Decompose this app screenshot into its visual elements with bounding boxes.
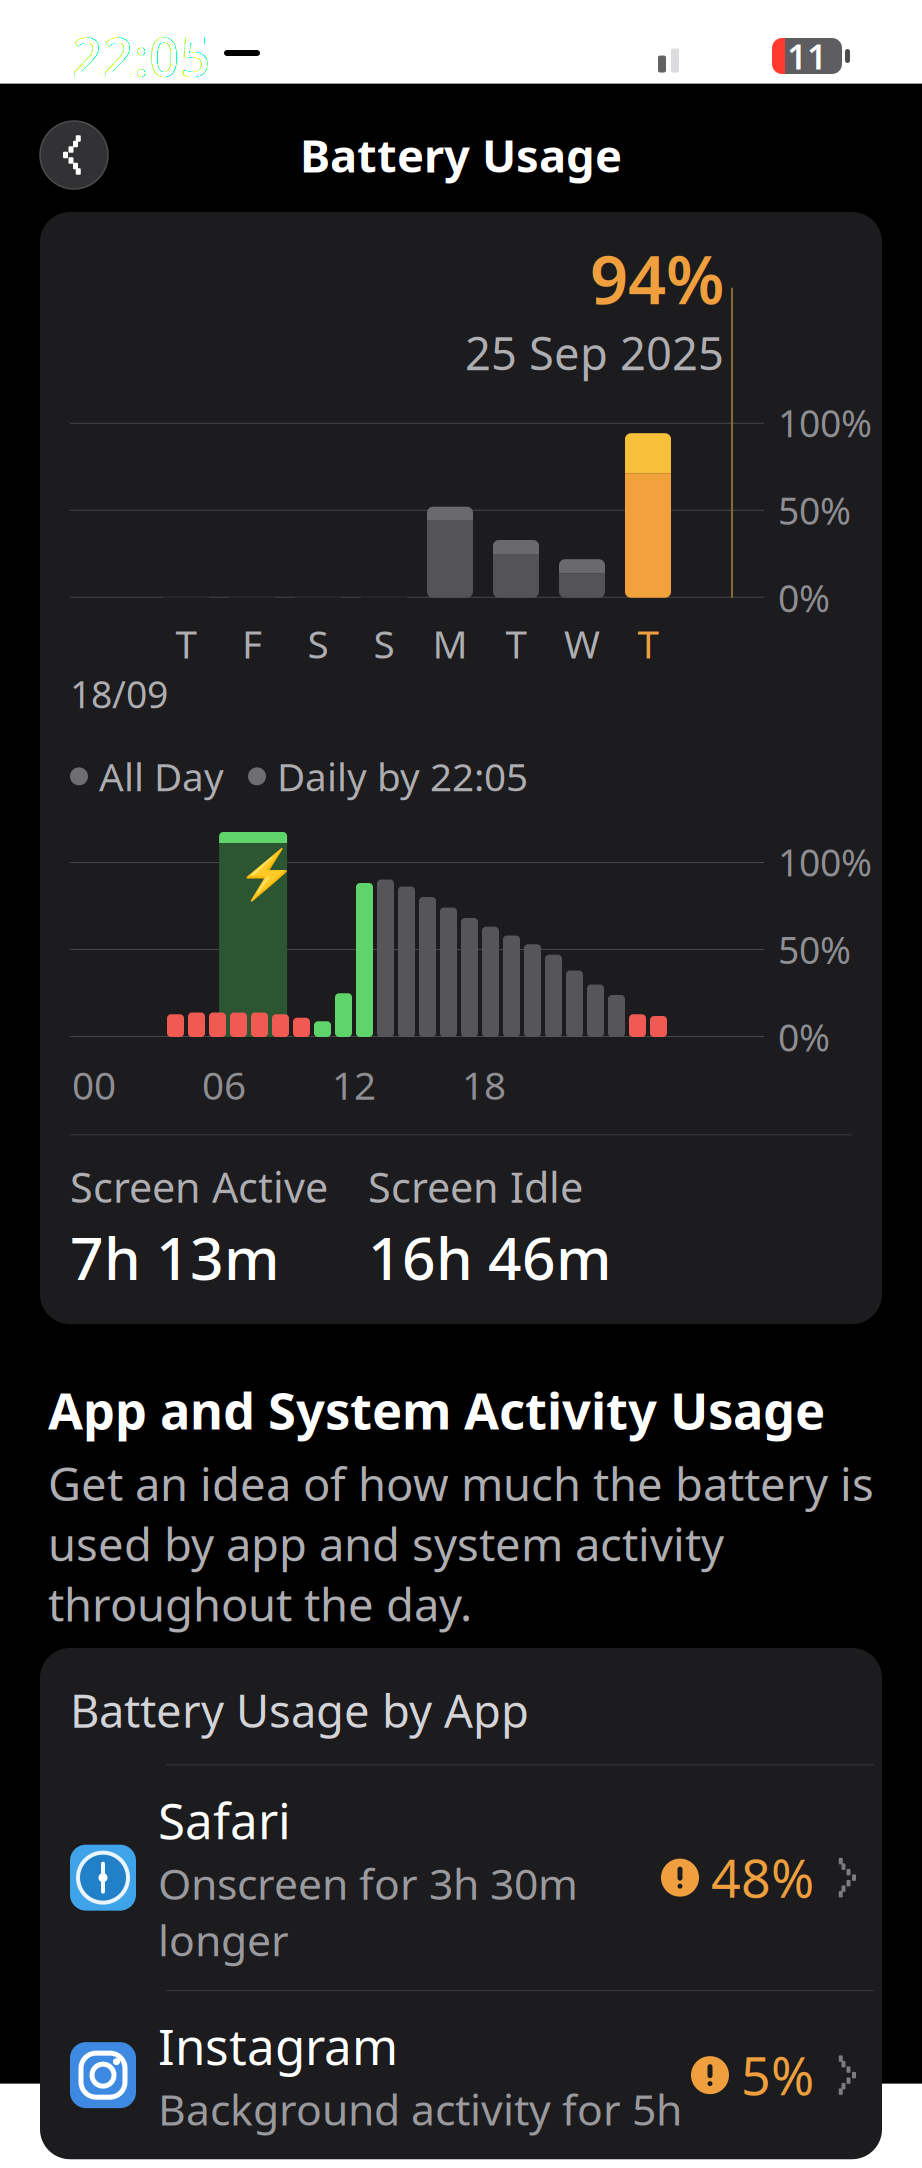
staticText: 11 (787, 33, 827, 79)
staticText: Daily by 22:05 (277, 751, 528, 802)
staticText: 0% (778, 1012, 830, 1062)
staticText: App and System Activity Usage (48, 1376, 825, 1443)
staticText: 7h 13m (70, 1218, 280, 1296)
staticText: 5% (741, 2041, 814, 2110)
staticText: 0% (778, 573, 830, 622)
staticText: Safari (158, 1787, 291, 1853)
staticText: 18/09 (70, 669, 168, 719)
staticText: 50% (778, 925, 851, 974)
button[interactable]: Instagram (40, 1991, 882, 2159)
staticText: Battery Usage by App (70, 1680, 529, 1740)
staticText: T (505, 618, 526, 669)
staticText: 18 (462, 1059, 506, 1110)
staticText: Screen Active (70, 1159, 328, 1214)
staticText: 100% (778, 837, 872, 887)
staticText: S (307, 618, 328, 669)
staticText: 12 (332, 1059, 376, 1110)
staticText: 50% (778, 485, 851, 535)
staticText: 22:05 (72, 21, 211, 91)
staticText: T (175, 618, 196, 669)
staticText: 100% (778, 398, 872, 447)
button[interactable]: Back (40, 121, 108, 189)
staticText: 48% (711, 1843, 814, 1912)
staticText: F (242, 618, 262, 669)
staticText: 06 (202, 1059, 246, 1110)
staticText: Get an idea of how much the battery is u… (48, 1453, 874, 1634)
staticText: 00 (72, 1059, 116, 1110)
staticText: All Day (99, 751, 224, 802)
staticText: 16h 46m (368, 1218, 612, 1296)
staticText: ⚡ (237, 847, 297, 902)
staticText: Battery Usage (300, 125, 622, 185)
button[interactable]: Safari (40, 1765, 882, 1990)
staticText: Screen Idle (368, 1159, 583, 1214)
staticText: W (564, 618, 600, 669)
staticText: 94% (590, 234, 724, 322)
staticText: Background activity for 5h (158, 2081, 682, 2137)
staticText: T (637, 618, 658, 669)
staticText: M (432, 618, 467, 669)
staticText: S (373, 618, 394, 669)
staticText: 25 Sep 2025 (465, 322, 724, 383)
staticText: Onscreen for 3h 30m longer (158, 1855, 578, 1968)
staticText: Instagram (158, 2013, 398, 2079)
